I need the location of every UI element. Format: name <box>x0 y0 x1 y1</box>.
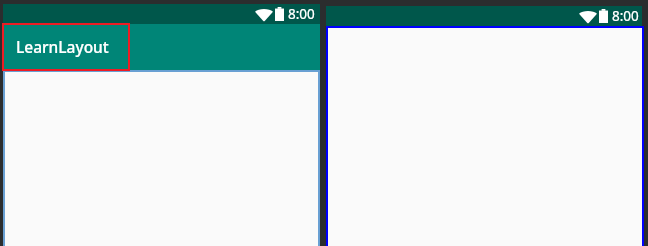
button[interactable]: Screen content <box>3 70 320 246</box>
other: Wi-Fi signal <box>255 8 273 21</box>
staticText: 8:00 <box>612 7 639 25</box>
other: Battery full <box>599 9 608 23</box>
button[interactable]: Empty layout preview <box>326 26 644 246</box>
button[interactable]: LearnLayout <box>3 24 320 70</box>
other: Battery full <box>275 7 284 21</box>
other: Wi-Fi signal <box>579 10 597 23</box>
staticText: 8:00 <box>288 5 315 23</box>
staticText: LearnLayout <box>16 36 109 57</box>
